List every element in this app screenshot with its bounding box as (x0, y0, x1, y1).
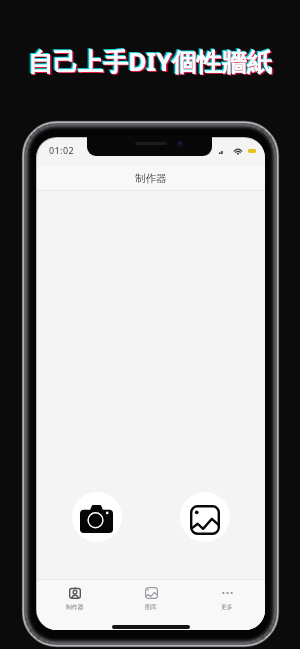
staticText: 自己上手DIY個性牆紙 (28, 44, 272, 78)
staticText: 制作器 (135, 172, 167, 185)
button[interactable]: 制作器 (37, 580, 113, 610)
staticText: 自己上手DIY個性牆紙 (30, 45, 274, 79)
button[interactable]: Take photo (72, 492, 122, 542)
button[interactable]: 更多 (189, 580, 265, 610)
staticText: 图库 (145, 603, 157, 610)
staticText: 制作器 (66, 603, 84, 610)
staticText: 更多 (221, 603, 233, 610)
button[interactable]: Choose image (180, 492, 230, 542)
button[interactable]: 图库 (113, 580, 189, 610)
staticText: 自己上手DIY個性牆紙 (29, 45, 273, 79)
staticText: 自己上手DIY個性牆紙 (27, 43, 271, 77)
staticText: 01:02 (49, 144, 75, 156)
staticText: 自己上手DIY個性牆紙 (26, 43, 270, 77)
